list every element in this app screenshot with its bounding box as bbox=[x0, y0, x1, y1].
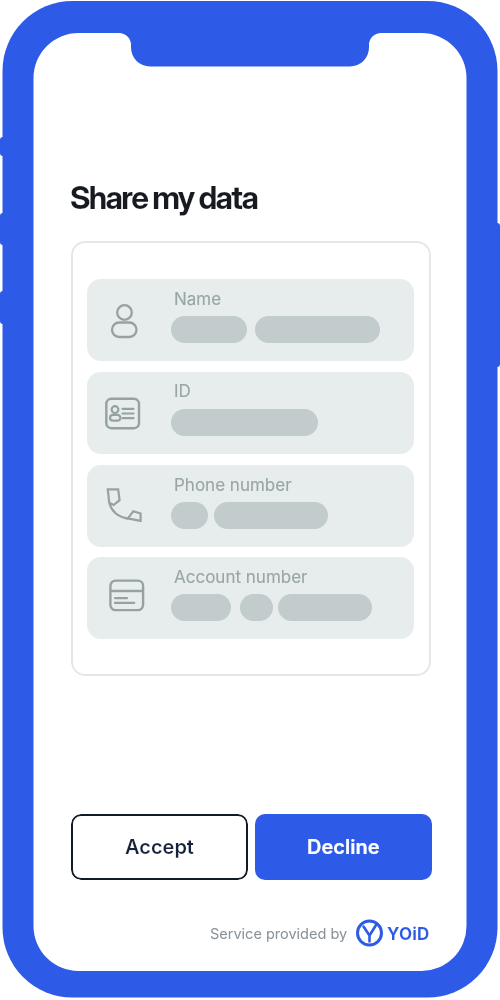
button[interactable]: Accept bbox=[71, 814, 248, 880]
staticText: Phone number bbox=[174, 475, 292, 496]
staticText: Share my data bbox=[70, 178, 258, 216]
staticText: Accept bbox=[125, 835, 194, 859]
staticText: YOiD bbox=[387, 924, 430, 945]
staticText: Service provided by bbox=[210, 925, 348, 943]
staticText: ID bbox=[174, 381, 191, 402]
button[interactable]: Decline bbox=[255, 814, 432, 880]
staticText: Decline bbox=[307, 835, 380, 859]
staticText: Account number bbox=[174, 567, 308, 588]
staticText: Name bbox=[174, 289, 222, 310]
